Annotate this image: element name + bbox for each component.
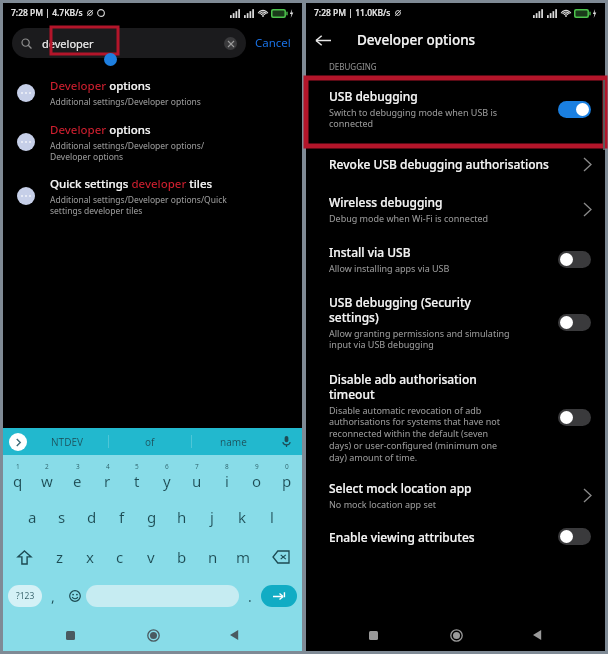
button[interactable]: Developer options bbox=[3, 71, 302, 115]
button[interactable]: name bbox=[192, 428, 274, 455]
button[interactable]: s bbox=[47, 497, 77, 537]
button[interactable]: Enter bbox=[261, 585, 297, 607]
staticText: DEBUGGING bbox=[329, 61, 377, 72]
staticText: Cancel bbox=[255, 35, 291, 51]
button[interactable]: 8 bbox=[212, 455, 242, 497]
button[interactable]: 9 bbox=[242, 455, 272, 497]
button[interactable]: z bbox=[45, 537, 75, 577]
staticText: i bbox=[225, 471, 229, 491]
button[interactable]: g bbox=[137, 497, 167, 537]
button[interactable]: d bbox=[77, 497, 107, 537]
button[interactable]: , bbox=[42, 577, 64, 615]
staticText: s bbox=[58, 507, 66, 527]
button[interactable]: Recents bbox=[55, 620, 85, 650]
button[interactable]: Space bbox=[86, 585, 239, 607]
button[interactable]: Disable adb authorisation timeout bbox=[306, 361, 605, 470]
staticText: Additional settings/Developer options/ D… bbox=[50, 140, 205, 162]
button[interactable]: 1 bbox=[3, 455, 32, 497]
button[interactable]: Revoke USB debugging authorisations bbox=[306, 144, 605, 184]
button[interactable]: Recents bbox=[358, 620, 388, 650]
button[interactable]: Toggle off bbox=[558, 528, 591, 545]
button[interactable]: USB debugging (Security settings) bbox=[306, 284, 605, 361]
button[interactable]: Toggle on bbox=[558, 101, 591, 118]
staticText: z bbox=[56, 547, 64, 567]
button[interactable]: Toggle off bbox=[558, 251, 591, 268]
button[interactable]: 2 bbox=[32, 455, 62, 497]
button[interactable]: f bbox=[107, 497, 137, 537]
button[interactable]: Enable viewing attributes bbox=[306, 520, 605, 549]
button[interactable]: Developer options bbox=[3, 115, 302, 169]
staticText: ?123 bbox=[16, 590, 35, 602]
staticText: 8 bbox=[225, 462, 229, 471]
button[interactable]: 3 bbox=[62, 455, 92, 497]
button[interactable]: 0 bbox=[272, 455, 302, 497]
button[interactable]: j bbox=[197, 497, 227, 537]
button[interactable]: b bbox=[166, 537, 197, 577]
button[interactable]: Cancel bbox=[246, 35, 293, 51]
staticText: 5 bbox=[135, 462, 139, 471]
button[interactable]: Backspace bbox=[259, 537, 302, 577]
button[interactable]: Back bbox=[220, 620, 250, 650]
button[interactable]: x bbox=[75, 537, 105, 577]
button[interactable]: 6 bbox=[152, 455, 182, 497]
button[interactable]: 5 bbox=[122, 455, 152, 497]
button[interactable]: Back bbox=[306, 23, 340, 57]
staticText: Developer options bbox=[50, 78, 151, 94]
button[interactable]: Select mock location app bbox=[306, 470, 605, 520]
staticText: Wireless debugging bbox=[329, 194, 443, 210]
button[interactable]: Toggle off bbox=[558, 409, 591, 426]
button[interactable]: k bbox=[227, 497, 257, 537]
button[interactable]: n bbox=[197, 537, 228, 577]
staticText: v bbox=[147, 547, 155, 567]
staticText: Disable adb authorisation timeout bbox=[329, 371, 477, 402]
button[interactable]: USB debugging bbox=[306, 76, 605, 144]
staticText: o bbox=[252, 471, 262, 491]
button[interactable]: Shift bbox=[3, 537, 45, 577]
staticText: Quick settings developer tiles bbox=[50, 176, 213, 192]
staticText: 7:28 PM | 4.7KB/s bbox=[11, 7, 83, 19]
staticText: Enable viewing attributes bbox=[329, 529, 475, 545]
staticText: q bbox=[13, 471, 23, 491]
staticText: b bbox=[177, 547, 187, 567]
button[interactable]: . bbox=[239, 577, 261, 615]
button[interactable]: Back bbox=[523, 620, 553, 650]
button[interactable]: Toggle off bbox=[558, 314, 591, 331]
staticText: h bbox=[177, 507, 187, 527]
button[interactable]: a bbox=[17, 497, 47, 537]
button[interactable]: Quick settings developer tiles bbox=[3, 169, 302, 223]
staticText: , bbox=[51, 587, 55, 606]
button[interactable]: Emoji bbox=[64, 577, 86, 615]
staticText: USB debugging bbox=[329, 88, 418, 104]
staticText: name bbox=[220, 435, 247, 449]
staticText: 2 bbox=[45, 462, 49, 471]
button[interactable]: NTDEV bbox=[27, 428, 108, 455]
button[interactable]: v bbox=[135, 537, 166, 577]
button[interactable]: Expand suggestions bbox=[9, 433, 27, 451]
button[interactable]: m bbox=[228, 537, 259, 577]
button[interactable]: Home bbox=[441, 620, 471, 650]
staticText: 7:28 PM | 11.0KB/s bbox=[314, 7, 391, 19]
staticText: l bbox=[270, 507, 274, 527]
staticText: Revoke USB debugging authorisations bbox=[329, 156, 549, 172]
button[interactable]: Clear search bbox=[224, 37, 237, 50]
staticText: u bbox=[192, 471, 202, 491]
staticText: developer bbox=[42, 36, 94, 51]
button[interactable]: Install via USB bbox=[306, 234, 605, 284]
button[interactable]: Wireless debugging bbox=[306, 184, 605, 234]
button[interactable]: l bbox=[257, 497, 287, 537]
button[interactable]: Voice input bbox=[274, 428, 298, 455]
button[interactable]: c bbox=[105, 537, 135, 577]
staticText: Switch to debugging mode when USB is con… bbox=[329, 106, 498, 130]
staticText: a bbox=[28, 507, 37, 527]
button[interactable]: ?123 bbox=[8, 585, 42, 607]
staticText: Developer options bbox=[50, 122, 151, 138]
staticText: . bbox=[248, 587, 252, 606]
staticText: 4 bbox=[106, 462, 110, 471]
button[interactable]: developer bbox=[12, 28, 246, 58]
button[interactable]: 4 bbox=[92, 455, 122, 497]
button[interactable]: h bbox=[167, 497, 197, 537]
button[interactable]: of bbox=[109, 428, 191, 455]
staticText: y bbox=[163, 471, 171, 491]
button[interactable]: 7 bbox=[182, 455, 212, 497]
button[interactable]: Home bbox=[138, 620, 168, 650]
